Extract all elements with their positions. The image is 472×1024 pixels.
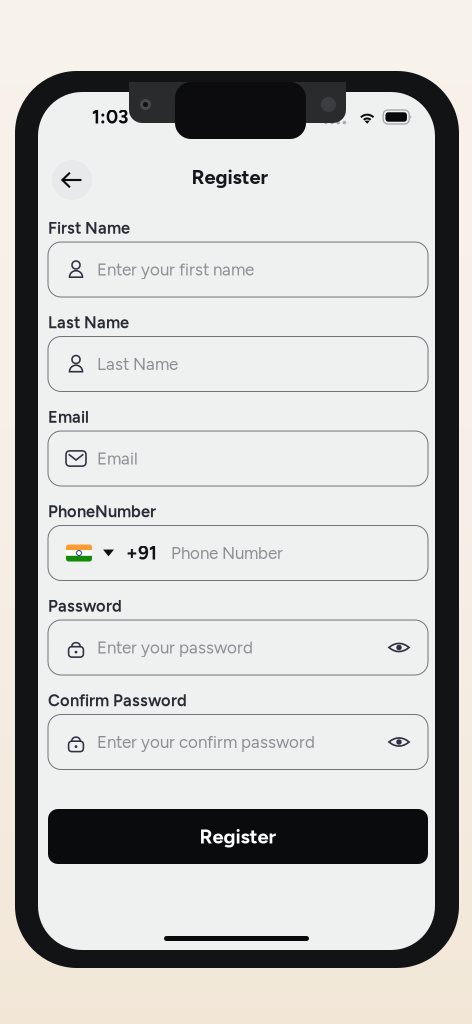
button[interactable]: Email [48, 431, 428, 486]
staticText: Enter your first name [97, 259, 254, 280]
button[interactable]: Enter your password [48, 620, 428, 675]
button[interactable]: Enter your confirm password [48, 714, 428, 769]
staticText: Phone Number [171, 543, 283, 563]
staticText: First Name [48, 218, 130, 238]
button[interactable]: +91 [48, 525, 428, 580]
staticText: Password [48, 596, 122, 616]
staticText: Email [48, 407, 89, 427]
staticText: 1:03 [92, 106, 128, 128]
staticText: Register [191, 165, 268, 189]
staticText: Enter your password [97, 637, 253, 658]
staticText: Confirm Password [48, 691, 187, 710]
button[interactable]: Last Name [48, 336, 428, 391]
button[interactable]: Register [48, 809, 428, 864]
button[interactable]: Back [52, 160, 92, 200]
staticText: Last Name [48, 313, 129, 332]
staticText: Enter your confirm password [97, 732, 315, 752]
staticText: Register [199, 824, 276, 848]
button[interactable]: Enter your first name [48, 242, 428, 297]
staticText: PhoneNumber [48, 502, 156, 521]
staticText: Last Name [97, 354, 178, 374]
staticText: +91 [126, 542, 157, 564]
staticText: Email [97, 448, 138, 469]
